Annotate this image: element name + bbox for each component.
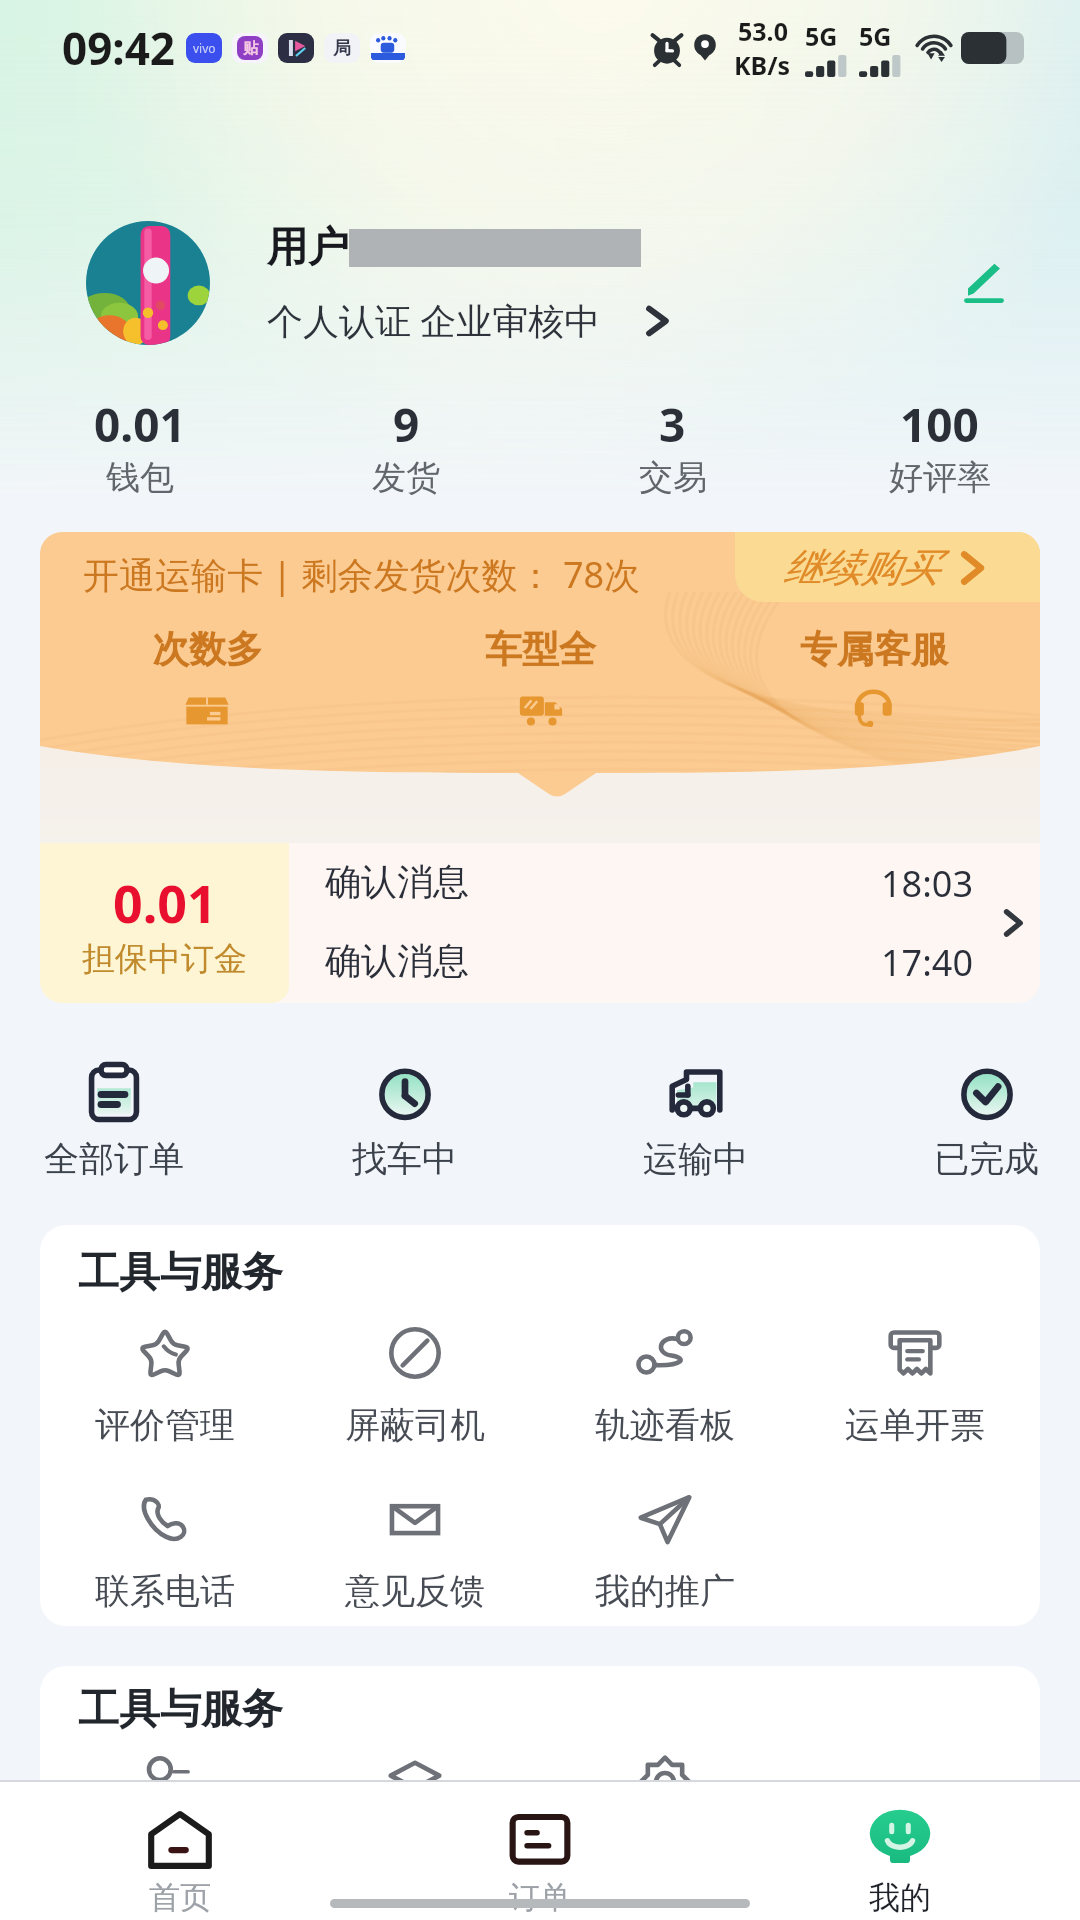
staticText: 17:40 xyxy=(881,938,974,987)
staticText: 5G xyxy=(859,19,892,53)
staticText: 0.01 xyxy=(113,867,217,938)
staticText: 53.0 xyxy=(738,14,788,48)
staticText: 我的 xyxy=(869,1878,931,1917)
button[interactable]: 3 xyxy=(539,393,806,499)
staticText: 工具与服务 xyxy=(78,1247,283,1299)
staticText: 09:42 xyxy=(62,18,176,78)
staticText: 运单开票 xyxy=(845,1403,985,1447)
button[interactable]: 专属客服 xyxy=(707,626,1040,733)
button[interactable]: 我的 xyxy=(720,1782,1080,1920)
button[interactable] xyxy=(290,1750,540,1832)
button[interactable]: 次数多 xyxy=(40,626,374,733)
button[interactable]: Edit profile xyxy=(945,244,1023,322)
staticText: 继续购买 xyxy=(783,543,939,592)
button[interactable]: 我的推广 xyxy=(540,1487,790,1613)
staticText: 9 xyxy=(393,393,420,456)
button[interactable]: 100 xyxy=(806,393,1073,499)
staticText: 用户 xyxy=(267,222,349,274)
staticText: 屏蔽司机 xyxy=(345,1403,485,1447)
staticText: 全部订单 xyxy=(44,1137,184,1181)
staticText: KB/s xyxy=(734,48,791,82)
staticText: 交易 xyxy=(639,456,707,499)
button[interactable]: 运输中 xyxy=(550,1057,841,1181)
staticText: 首页 xyxy=(149,1878,211,1917)
staticText: 18:03 xyxy=(881,859,974,908)
button[interactable]: 车型全 xyxy=(374,626,707,733)
button[interactable]: 运单开票 xyxy=(790,1321,1040,1447)
button[interactable]: 0.01 xyxy=(40,843,1040,1003)
button[interactable]: 轨迹看板 xyxy=(540,1321,790,1447)
staticText: 找车中 xyxy=(352,1137,457,1181)
staticText: 100 xyxy=(900,393,979,456)
staticText: 订单 xyxy=(509,1878,571,1917)
staticText: 开通运输卡 | 剩余发货次数： 78次 xyxy=(83,550,641,599)
staticText: 0.01 xyxy=(94,393,186,456)
button[interactable]: 个人认证 企业审核中 xyxy=(267,296,679,345)
staticText: 工具与服务 xyxy=(78,1684,283,1736)
button[interactable]: 继续购买 xyxy=(735,532,1040,602)
staticText: 次数多 xyxy=(152,626,263,673)
staticText: 联系电话 xyxy=(95,1569,235,1613)
button[interactable]: 评价管理 xyxy=(40,1321,290,1447)
staticText: 3 xyxy=(659,393,686,456)
staticText: 我的推广 xyxy=(595,1569,735,1613)
staticText: 专属客服 xyxy=(800,626,948,673)
staticText: 意见反馈 xyxy=(345,1569,485,1613)
staticText: vivo xyxy=(193,40,216,56)
button[interactable]: 找车中 xyxy=(259,1057,550,1181)
staticText: 贴 xyxy=(243,39,258,58)
staticText: 车型全 xyxy=(485,626,596,673)
button[interactable]: 订单 xyxy=(360,1782,720,1920)
button[interactable]: 已完成 xyxy=(841,1057,1080,1181)
button[interactable]: 联系电话 xyxy=(40,1487,290,1613)
button[interactable]: 首页 xyxy=(0,1782,360,1920)
staticText: 评价管理 xyxy=(95,1403,235,1447)
staticText: 好评率 xyxy=(889,456,991,499)
button[interactable] xyxy=(540,1750,790,1832)
staticText: 确认消息 xyxy=(325,859,469,904)
button[interactable]: 9 xyxy=(273,393,539,499)
button[interactable]: 0.01 xyxy=(7,393,273,499)
button[interactable]: 屏蔽司机 xyxy=(290,1321,540,1447)
staticText: 轨迹看板 xyxy=(595,1403,735,1447)
staticText: 钱包 xyxy=(106,456,174,499)
staticText: 确认消息 xyxy=(325,938,469,983)
staticText: 个人认证 企业审核中 xyxy=(267,296,601,345)
staticText: 运输中 xyxy=(643,1137,748,1181)
staticText: 5G xyxy=(805,19,838,53)
staticText: 发货 xyxy=(372,456,440,499)
button[interactable]: 全部订单 xyxy=(0,1057,259,1181)
button[interactable]: 意见反馈 xyxy=(290,1487,540,1613)
staticText: 已完成 xyxy=(934,1137,1039,1181)
staticText: 担保中订金 xyxy=(82,938,247,980)
staticText: 局 xyxy=(333,37,351,60)
button[interactable] xyxy=(40,1750,290,1832)
